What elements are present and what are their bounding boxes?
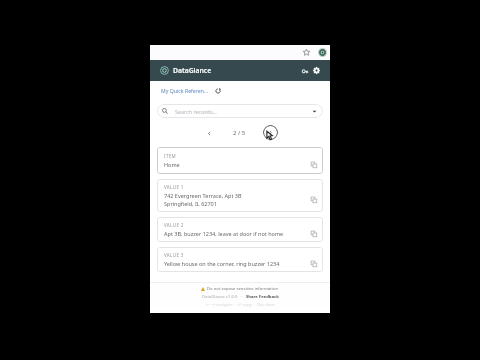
button[interactable]: Next record xyxy=(263,125,278,140)
staticText: Share Feedback xyxy=(246,294,279,300)
staticText: My Quick Referen… xyxy=(161,87,209,94)
button[interactable]: Copy link xyxy=(299,65,310,76)
button[interactable]: Copy ITEM xyxy=(308,159,319,170)
staticText: VALUE 1 xyxy=(164,184,184,190)
button[interactable]: VALUE 2 xyxy=(157,217,323,242)
staticText: ← → navigate · ↵ copy · Esc close xyxy=(206,302,275,308)
staticText: DataGlance v1.0.0 xyxy=(202,294,238,300)
button[interactable]: Share Feedback xyxy=(246,294,279,300)
button[interactable]: Bookmark xyxy=(301,47,312,58)
button[interactable]: VALUE 1 xyxy=(157,179,323,212)
staticText: Springfield, IL 62701 xyxy=(164,200,217,207)
button[interactable]: ITEM xyxy=(157,147,323,174)
button[interactable]: DataGlance extension xyxy=(318,48,327,57)
staticText: ITEM xyxy=(164,153,177,159)
staticText: Apt 3B, buzzer 1234, leave at door if no… xyxy=(164,230,284,237)
staticText: 742 Evergreen Terrace, Apt 3B xyxy=(164,192,242,199)
button[interactable]: Refresh xyxy=(213,86,222,95)
staticText: DataGlance xyxy=(173,66,212,75)
button[interactable]: Previous record xyxy=(202,126,216,140)
staticText: VALUE 2 xyxy=(164,222,184,228)
button[interactable]: VALUE 3 xyxy=(157,247,323,272)
staticText: Home xyxy=(164,161,180,168)
staticText: VALUE 3 xyxy=(164,252,184,258)
staticText: Do not expose sensitive information xyxy=(207,286,279,292)
button[interactable]: Copy VALUE 1 xyxy=(308,194,319,205)
button[interactable]: Copy VALUE 2 xyxy=(308,228,319,239)
button[interactable]: Settings xyxy=(311,65,322,76)
button[interactable]: Search records… xyxy=(157,104,323,118)
staticText: Yellow house on the corner, ring buzzer … xyxy=(164,260,280,267)
staticText: 2 / 5 xyxy=(233,129,246,137)
staticText: · xyxy=(238,294,246,300)
button[interactable]: Copy VALUE 3 xyxy=(308,258,319,269)
button[interactable]: My Quick Referen… xyxy=(161,87,209,94)
staticText: Search records… xyxy=(175,108,217,115)
